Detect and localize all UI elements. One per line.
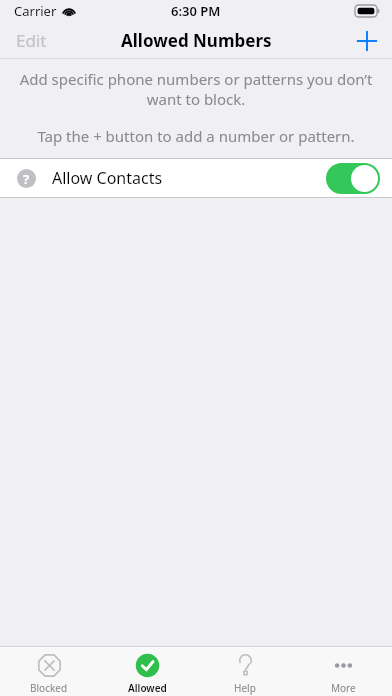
staticText: Carrier: [14, 2, 57, 20]
staticText: Tap the + button to add a number or patt…: [14, 126, 378, 146]
staticText: Help: [234, 681, 256, 695]
button[interactable]: Help: [196, 648, 294, 695]
button[interactable]: Edit: [0, 23, 63, 58]
button[interactable]: Help about Allow Contacts: [17, 169, 36, 188]
staticText: ?: [23, 170, 30, 188]
button[interactable]: Add number or pattern: [342, 26, 392, 56]
button[interactable]: Allowed: [98, 648, 196, 695]
button[interactable]: Blocked: [0, 648, 98, 695]
button[interactable]: More: [294, 648, 392, 695]
button[interactable]: Allow Contacts toggle, on: [326, 163, 380, 194]
staticText: More: [331, 681, 356, 695]
staticText: 6:30 PM: [171, 2, 221, 20]
staticText: Allowed: [128, 681, 167, 695]
staticText: Blocked: [30, 681, 68, 695]
staticText: Allow Contacts: [52, 167, 163, 189]
button[interactable]: Help about Allow Contacts: [0, 159, 392, 197]
staticText: Edit: [16, 29, 47, 52]
staticText: Allowed Numbers: [121, 29, 272, 52]
staticText: Add specific phone numbers or patterns y…: [14, 69, 378, 109]
